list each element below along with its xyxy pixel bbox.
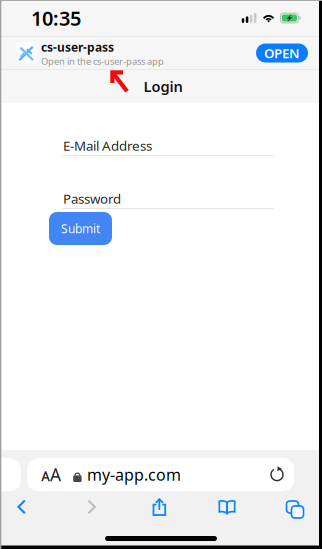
button[interactable]: Tabs (270, 494, 314, 520)
staticText: Password (63, 190, 121, 207)
staticText: OPEN (264, 44, 300, 62)
staticText: Login (143, 76, 182, 96)
button[interactable]: OPEN (256, 43, 308, 62)
button[interactable]: Forward (69, 494, 113, 520)
button[interactable]: Share (137, 494, 181, 520)
staticText: Open in the cs-user-pass app (41, 55, 164, 67)
staticText: cs-user-pass (41, 39, 114, 55)
staticText: Submit (61, 220, 100, 236)
staticText: E-Mail Address (63, 137, 152, 154)
button[interactable]: Bookmarks (205, 494, 249, 520)
staticText: ᴀA (41, 463, 61, 486)
button[interactable]: Back (0, 494, 44, 520)
button[interactable]: ᴀA (27, 458, 294, 491)
staticText: my-app.com (87, 464, 181, 485)
staticText: 10:35 (31, 5, 81, 31)
button[interactable]: Submit (49, 212, 112, 245)
